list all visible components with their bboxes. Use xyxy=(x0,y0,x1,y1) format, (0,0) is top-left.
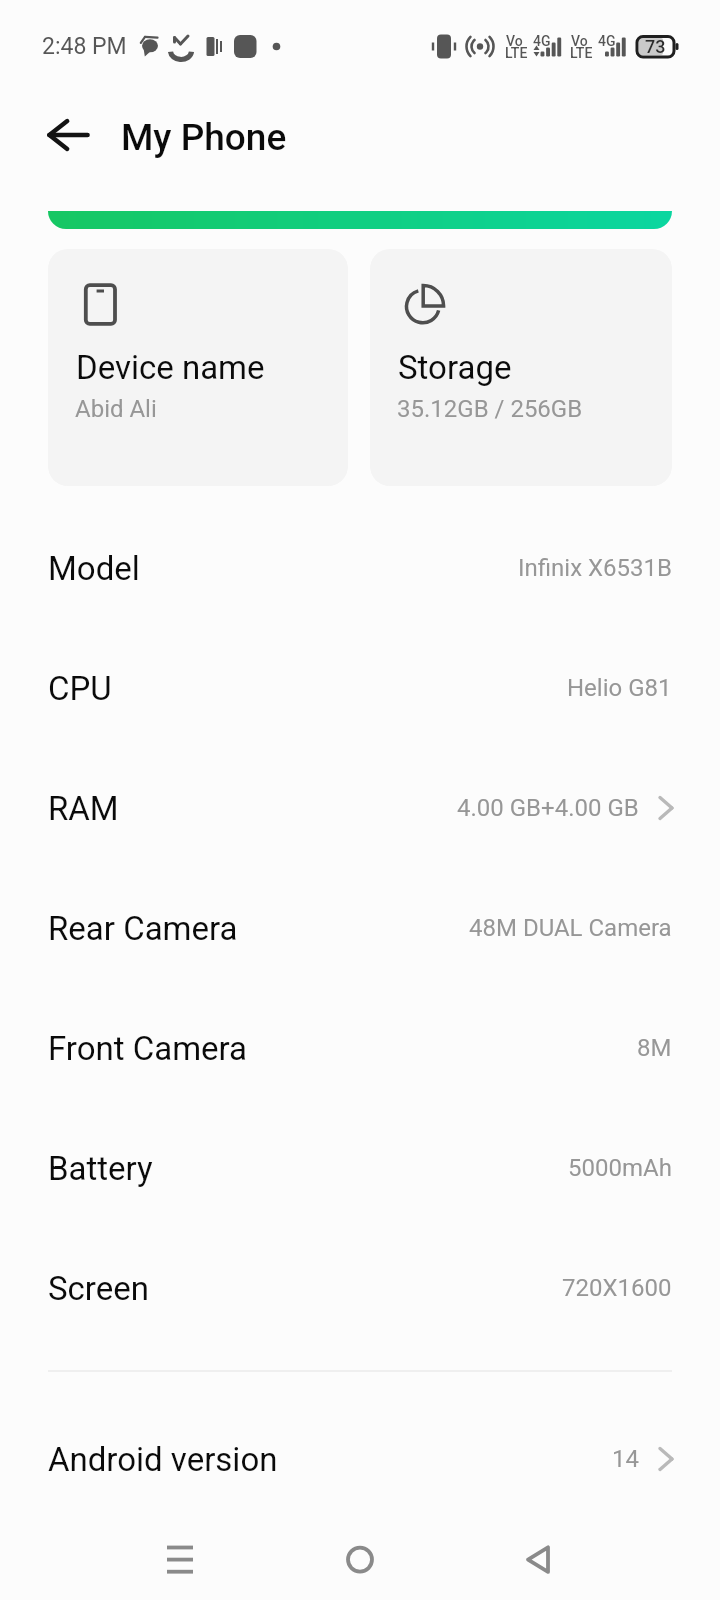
staticText: Infinix X6531B xyxy=(518,554,672,582)
staticText: 4.00 GB+4.00 GB xyxy=(457,794,639,822)
staticText: 8M xyxy=(637,1034,672,1062)
staticText: 4G xyxy=(598,33,616,49)
button[interactable]: Model xyxy=(0,508,720,628)
button[interactable]: Back xyxy=(515,1535,563,1583)
button[interactable]: Back xyxy=(33,101,102,170)
staticText: 73 xyxy=(645,36,666,57)
staticText: CPU xyxy=(48,669,112,708)
button[interactable] xyxy=(48,211,672,229)
staticText: Screen xyxy=(48,1269,149,1308)
staticText: Android version xyxy=(48,1440,278,1479)
staticText: Rear Camera xyxy=(48,909,238,948)
button[interactable]: RAM xyxy=(0,748,720,868)
button[interactable]: Android version xyxy=(0,1399,720,1519)
button[interactable]: Storage xyxy=(370,249,672,486)
staticText: My Phone xyxy=(121,116,287,159)
staticText: 5000mAh xyxy=(568,1154,672,1182)
button[interactable]: Home xyxy=(336,1535,384,1583)
staticText: Vo xyxy=(506,33,523,49)
staticText: RAM xyxy=(48,789,119,828)
button[interactable]: Front Camera xyxy=(0,988,720,1108)
staticText: 720X1600 xyxy=(562,1274,672,1302)
staticText: 2:48 PM xyxy=(42,33,127,60)
staticText: 48M DUAL Camera xyxy=(469,914,672,942)
staticText: Vo xyxy=(571,33,588,49)
staticText: 4G xyxy=(533,33,551,49)
staticText: 14 xyxy=(612,1445,639,1473)
staticText: Battery xyxy=(48,1149,153,1188)
button[interactable]: Rear Camera xyxy=(0,868,720,988)
staticText: Front Camera xyxy=(48,1029,248,1068)
staticText: LTE xyxy=(570,45,593,61)
staticText: 35.12GB / 256GB xyxy=(397,395,583,423)
staticText: Device name xyxy=(76,348,265,387)
staticText: Storage xyxy=(398,348,512,387)
staticText: Helio G81 xyxy=(567,674,672,702)
button[interactable]: Screen xyxy=(0,1228,720,1348)
staticText: Model xyxy=(48,549,140,588)
staticText: LTE xyxy=(505,45,528,61)
button[interactable]: Battery xyxy=(0,1108,720,1228)
button[interactable]: Device name xyxy=(48,249,348,486)
staticText: Abid Ali xyxy=(75,395,157,423)
button[interactable]: CPU xyxy=(0,628,720,748)
button[interactable]: Recent apps xyxy=(155,1535,203,1583)
